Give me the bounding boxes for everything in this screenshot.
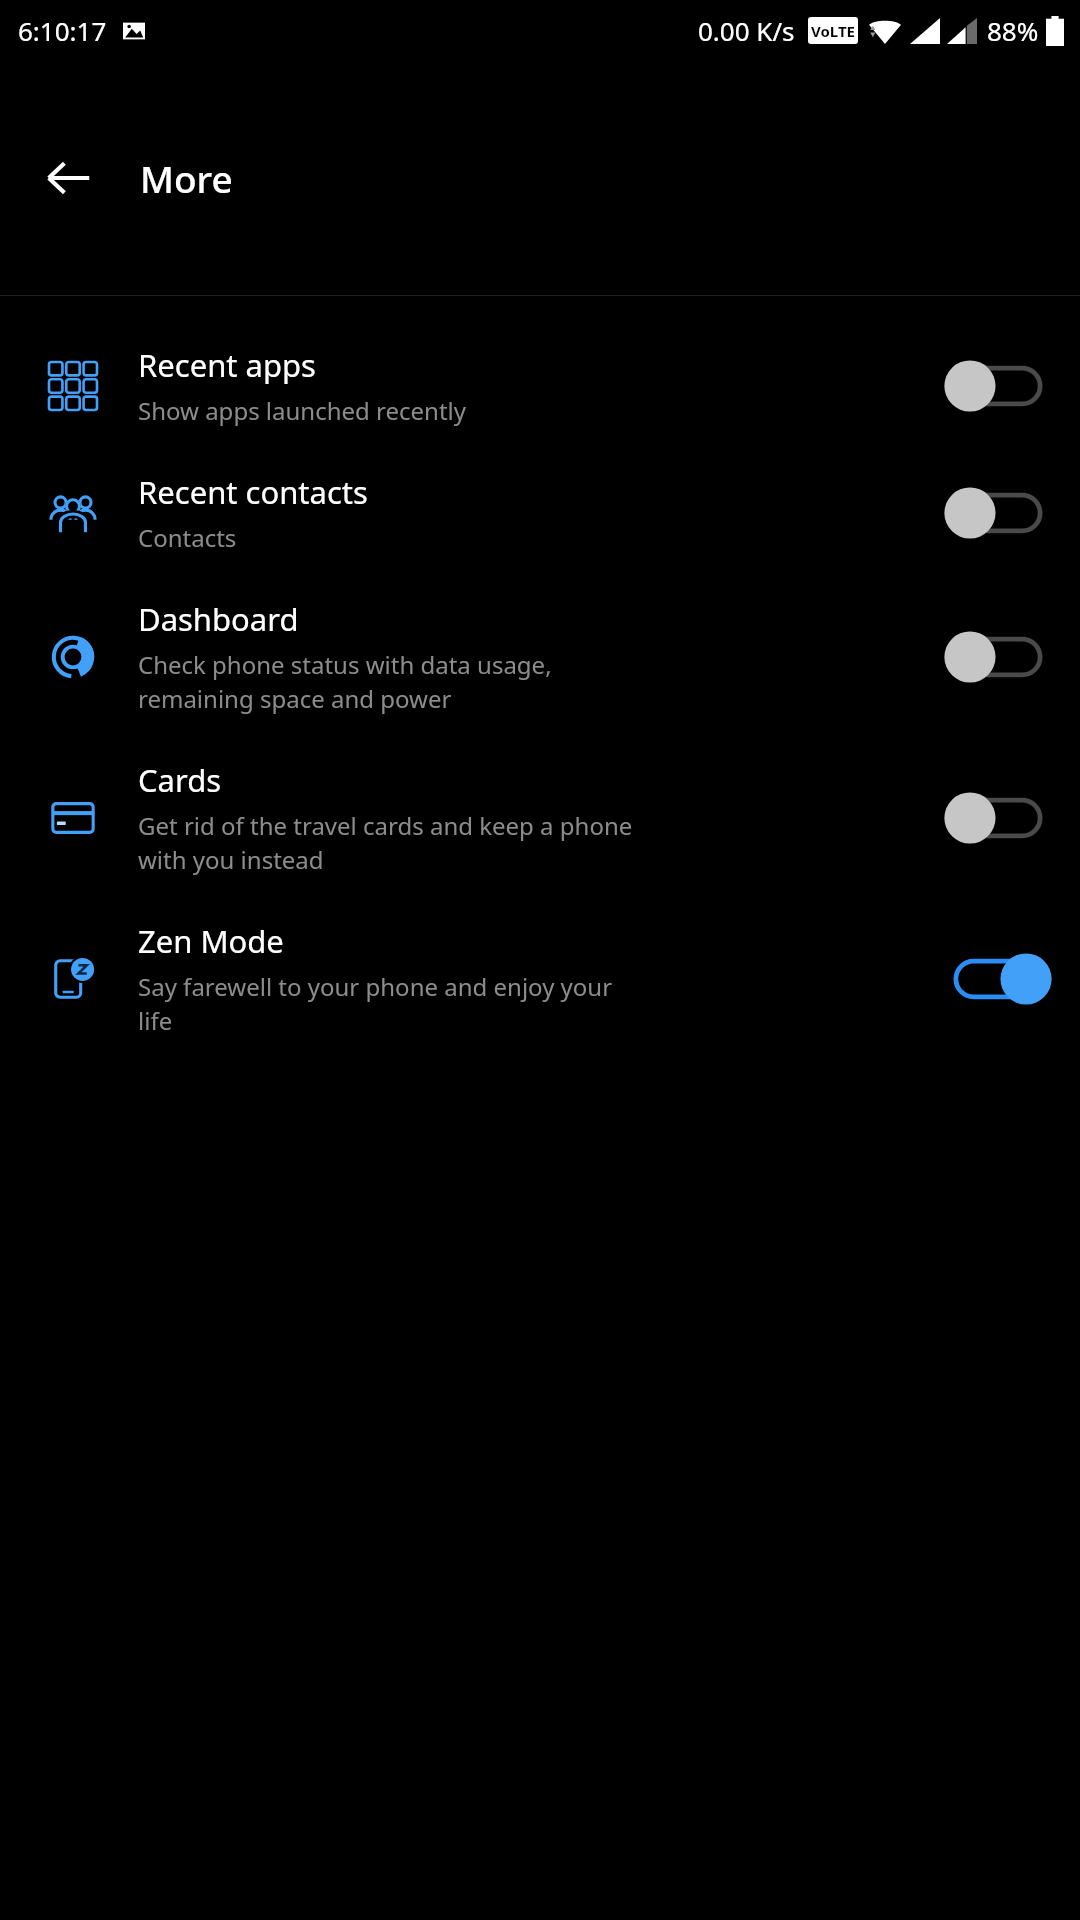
staticText: Contacts	[138, 521, 237, 554]
button[interactable]: Recent contacts	[0, 449, 1080, 576]
button[interactable]: Dashboard	[0, 576, 1080, 737]
staticText: Check phone status with data usage, rema…	[138, 648, 552, 715]
button[interactable]: Back	[40, 149, 98, 207]
staticText: More	[140, 153, 233, 203]
staticText: VoLTE	[811, 21, 855, 41]
staticText: 6:10:17	[18, 13, 107, 48]
staticText: 0.00 K/s	[698, 13, 795, 48]
staticText: Dashboard	[138, 598, 299, 640]
button[interactable]: Off	[944, 354, 1052, 418]
button[interactable]: Cards	[0, 737, 1080, 898]
button[interactable]: Off	[944, 625, 1052, 689]
button[interactable]: Zen Mode	[0, 898, 1080, 1059]
staticText: Recent contacts	[138, 471, 368, 513]
staticText: Zen Mode	[138, 920, 284, 962]
button[interactable]: Off	[944, 786, 1052, 850]
button[interactable]: Off	[944, 481, 1052, 545]
staticText: Get rid of the travel cards and keep a p…	[138, 809, 633, 876]
staticText: Cards	[138, 759, 222, 801]
staticText: Show apps launched recently	[138, 394, 467, 427]
button[interactable]: Recent apps	[0, 322, 1080, 449]
staticText: Say farewell to your phone and enjoy you…	[138, 970, 613, 1037]
button[interactable]: On	[944, 947, 1052, 1011]
staticText: 88%	[987, 13, 1039, 48]
staticText: Recent apps	[138, 344, 316, 386]
